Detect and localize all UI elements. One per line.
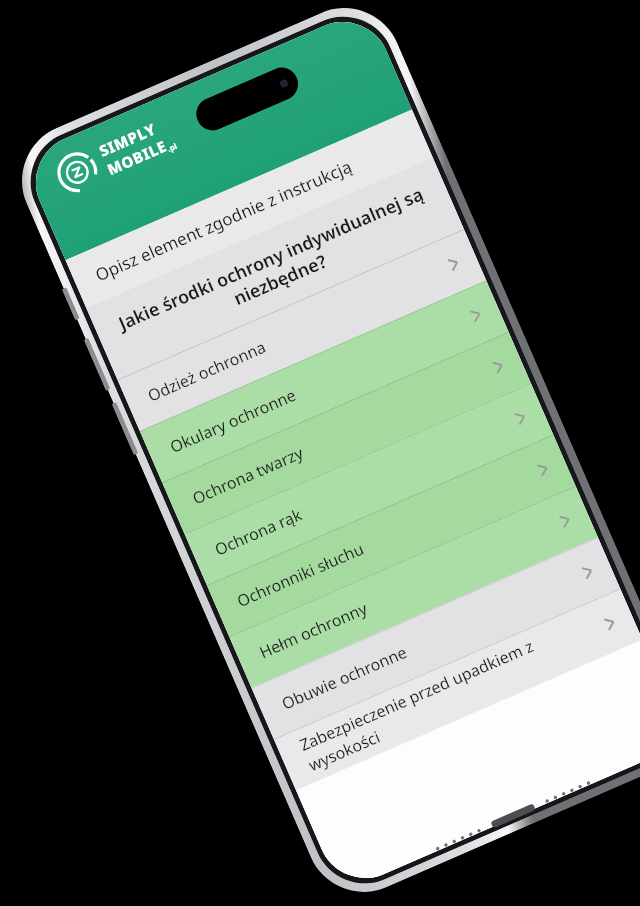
button[interactable]: Odzież ochronna bbox=[117, 229, 486, 431]
staticText: Ochronniki słuchu bbox=[233, 461, 542, 612]
button[interactable]: Opisz element zgodnie z instrukcją bbox=[65, 110, 433, 308]
staticText: Obuwie ochronne bbox=[278, 564, 587, 715]
staticText: Opisz element zgodnie z instrukcją bbox=[92, 154, 356, 286]
button[interactable]: Zabezpieczenie przed upadkiem z wysokośc… bbox=[274, 588, 640, 790]
staticText: Odzież ochronna bbox=[144, 256, 453, 407]
button[interactable]: Ochrona twarzy bbox=[162, 331, 531, 534]
button[interactable]: Ochronniki słuchu bbox=[207, 434, 576, 636]
button[interactable]: Hełm ochronny bbox=[229, 486, 598, 688]
staticText: Okulary ochronne bbox=[167, 307, 475, 458]
button[interactable]: Okulary ochronne bbox=[140, 280, 509, 482]
button[interactable]: Simply Mobile bbox=[51, 113, 179, 199]
staticText: SIMPLY bbox=[96, 118, 159, 161]
staticText: MOBILE bbox=[104, 136, 170, 179]
staticText: .pl bbox=[165, 140, 179, 154]
staticText: Jakie środki ochrony indywidualnej są ni… bbox=[115, 181, 436, 356]
staticText: Zabezpieczenie przed upadkiem z wysokośc… bbox=[296, 605, 614, 776]
other: Logo bbox=[51, 146, 104, 199]
button[interactable]: Obuwie ochronne bbox=[251, 537, 620, 739]
staticText: Hełm ochronny bbox=[256, 513, 565, 663]
staticText: Ochrona rąk bbox=[211, 410, 520, 561]
button[interactable]: Ochrona rąk bbox=[184, 383, 553, 585]
staticText: Ochrona twarzy bbox=[189, 359, 498, 509]
